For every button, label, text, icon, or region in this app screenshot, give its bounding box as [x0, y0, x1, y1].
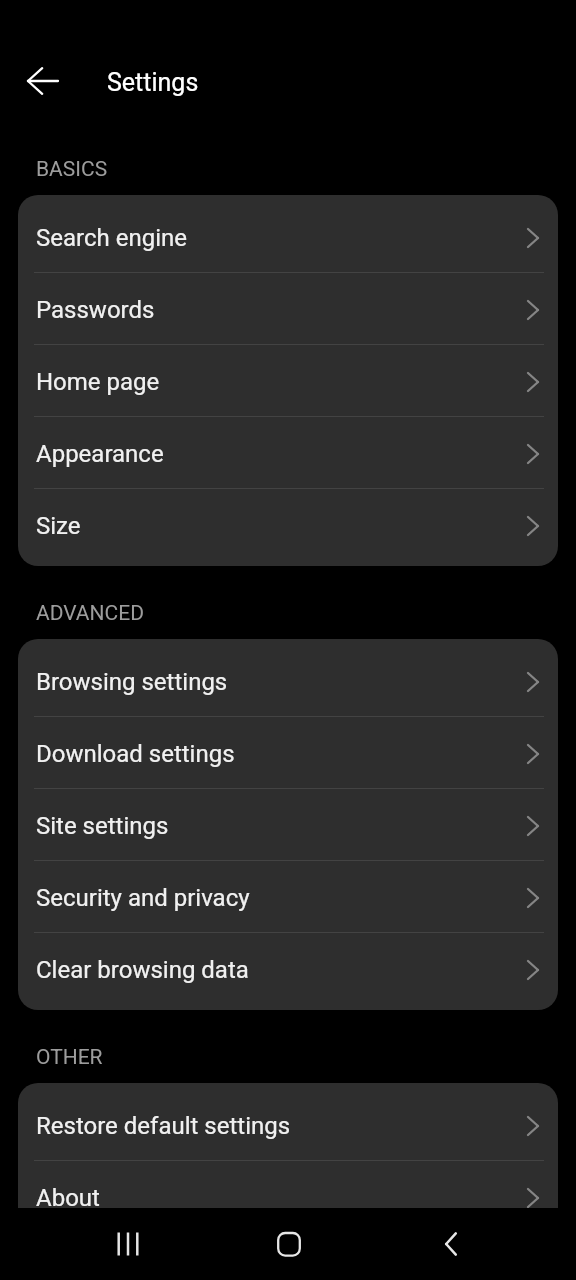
- staticText: ADVANCED: [36, 601, 144, 626]
- staticText: Restore default settings: [36, 1112, 527, 1140]
- staticText: Download settings: [36, 740, 527, 768]
- staticText: Browsing settings: [36, 668, 527, 696]
- button[interactable]: Appearance: [18, 416, 558, 488]
- button[interactable]: Browsing settings: [18, 644, 558, 716]
- staticText: BASICS: [36, 157, 108, 182]
- button[interactable]: About: [18, 1160, 558, 1232]
- button[interactable]: Help: [18, 1232, 558, 1274]
- button[interactable]: Home: [262, 1217, 315, 1270]
- button[interactable]: Search engine: [18, 200, 558, 272]
- staticText: Clear browsing data: [36, 956, 527, 984]
- button[interactable]: Clear browsing data: [18, 932, 558, 1004]
- button[interactable]: Recent apps: [101, 1217, 154, 1270]
- staticText: Help: [36, 1241, 527, 1269]
- button[interactable]: Navigate up: [1, 40, 85, 122]
- button[interactable]: Back: [424, 1217, 477, 1270]
- staticText: Home page: [36, 368, 527, 396]
- staticText: Settings: [107, 68, 199, 97]
- button[interactable]: Restore default settings: [18, 1088, 558, 1160]
- staticText: About: [36, 1184, 527, 1212]
- button[interactable]: Download settings: [18, 716, 558, 788]
- button[interactable]: Passwords: [18, 272, 558, 344]
- staticText: Security and privacy: [36, 884, 527, 912]
- staticText: Size: [36, 512, 527, 540]
- staticText: Site settings: [36, 812, 527, 840]
- button[interactable]: Home page: [18, 344, 558, 416]
- button[interactable]: Security and privacy: [18, 860, 558, 932]
- button[interactable]: Size: [18, 488, 558, 560]
- staticText: Appearance: [36, 440, 527, 468]
- staticText: Passwords: [36, 296, 527, 324]
- staticText: OTHER: [36, 1045, 103, 1070]
- staticText: Search engine: [36, 224, 527, 252]
- button[interactable]: Site settings: [18, 788, 558, 860]
